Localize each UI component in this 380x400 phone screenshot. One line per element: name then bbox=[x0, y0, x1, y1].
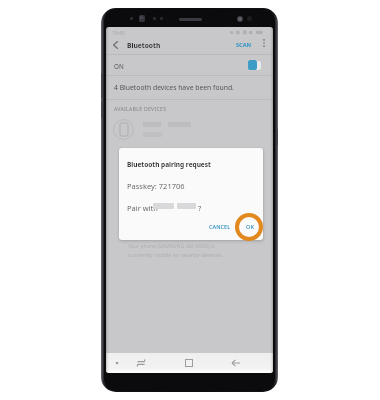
button[interactable]: Recent apps bbox=[130, 354, 152, 372]
staticText: CANCEL bbox=[209, 223, 231, 231]
button[interactable]: CANCEL bbox=[204, 219, 236, 235]
button[interactable]: Back bbox=[225, 354, 247, 372]
staticText: currently visible to nearby devices. bbox=[128, 251, 224, 259]
staticText: Your phone (SAMSUNG-SM-N950) is bbox=[128, 242, 215, 249]
staticText: AVAILABLE DEVICES bbox=[114, 106, 167, 113]
staticText: SCAN bbox=[236, 41, 252, 49]
button[interactable]: Navigate up bbox=[107, 37, 123, 53]
button[interactable]: More options bbox=[258, 37, 270, 49]
staticText: OK bbox=[246, 223, 254, 231]
staticText: ? bbox=[198, 203, 202, 213]
button[interactable]: Assistant bbox=[106, 354, 128, 372]
button[interactable]: SCAN bbox=[233, 38, 255, 52]
staticText: ON bbox=[114, 62, 124, 71]
button[interactable]: Bluetooth on bbox=[106, 54, 273, 76]
staticText: 4 Bluetooth devices have been found. bbox=[114, 83, 234, 92]
staticText: Pair with bbox=[127, 203, 158, 213]
button[interactable]: Available device bbox=[106, 115, 273, 141]
staticText: Bluetooth pairing request bbox=[127, 160, 211, 169]
button[interactable]: OK bbox=[241, 219, 259, 235]
staticText: 10:45 bbox=[112, 30, 125, 37]
button[interactable]: Home bbox=[178, 354, 200, 372]
staticText: Passkey: 721706 bbox=[127, 181, 185, 191]
staticText: Bluetooth bbox=[127, 41, 161, 50]
